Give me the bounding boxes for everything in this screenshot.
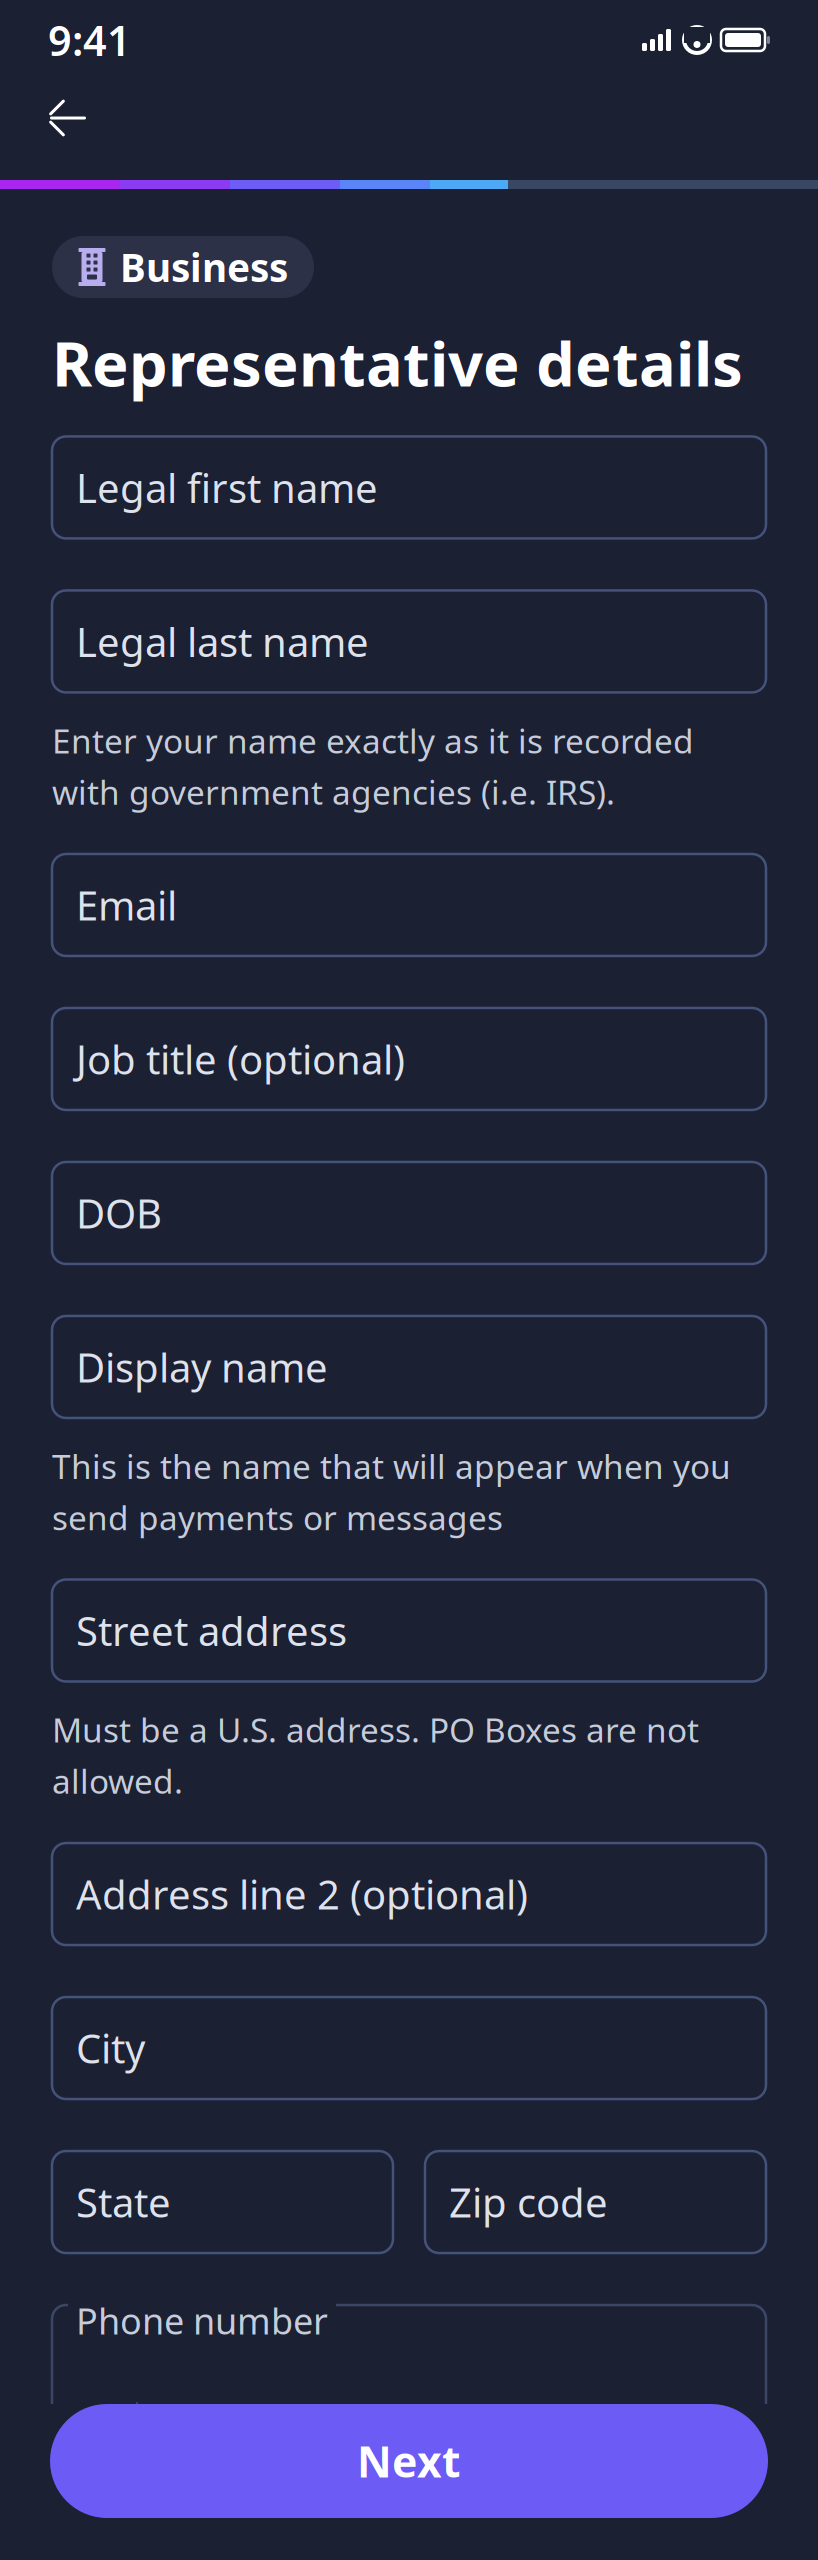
button[interactable]: Next (50, 2404, 768, 2518)
staticText: Phone number (76, 2296, 328, 2344)
staticText: Job title (optional) (76, 1032, 405, 1085)
staticText: Business (120, 241, 288, 293)
button[interactable]: Job title (optional) (52, 1008, 766, 1110)
staticText: Email (76, 878, 177, 931)
button[interactable]: DOB (52, 1162, 766, 1264)
button[interactable]: Address line 2 (optional) (52, 1843, 766, 1945)
staticText: Enter your name exactly as it is recorde… (52, 718, 694, 814)
staticText: +1 (555) 555-5555 (160, 2396, 493, 2450)
staticText: Legal last name (76, 615, 369, 668)
staticText: This is the name that will appear when y… (52, 1444, 731, 1539)
button[interactable]: Back (30, 86, 106, 150)
staticText: State (76, 2175, 171, 2229)
staticText: Legal first name (76, 461, 378, 514)
button[interactable]: City (52, 1997, 766, 2099)
staticText: Representative details (52, 322, 743, 403)
button[interactable]: Legal last name (52, 590, 766, 692)
button[interactable]: Street address (52, 1579, 766, 1681)
staticText: Must be a U.S. address. PO Boxes are not… (52, 1707, 699, 1803)
staticText: DOB (76, 1186, 162, 1239)
button[interactable]: State (52, 2151, 393, 2253)
staticText: Next (357, 2433, 461, 2489)
staticText: Address line 2 (optional) (76, 1867, 528, 1921)
staticText: Street address (76, 1604, 347, 1657)
button[interactable]: Display name (52, 1316, 766, 1418)
staticText: 9:41 (48, 13, 131, 67)
button[interactable]: Legal first name (52, 436, 766, 538)
button[interactable]: Zip code (425, 2151, 766, 2253)
button[interactable]: Business (52, 236, 314, 298)
staticText: City (76, 2021, 145, 2075)
staticText: Display name (76, 1340, 328, 1393)
button[interactable]: Email (52, 854, 766, 956)
button[interactable]: Phone number (52, 2305, 766, 2455)
staticText: Zip code (449, 2175, 608, 2229)
